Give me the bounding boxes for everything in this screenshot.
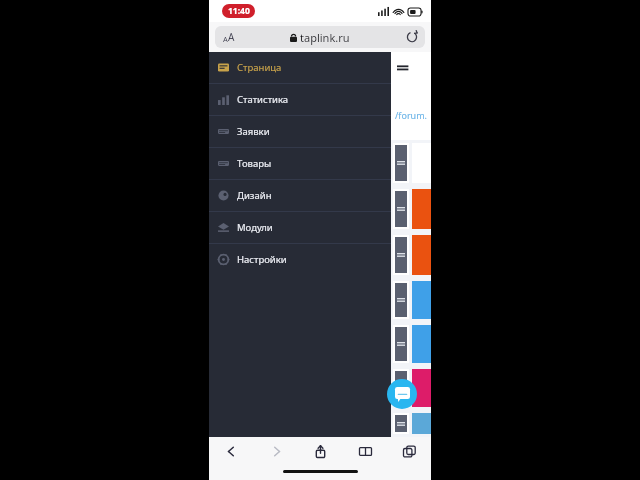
button[interactable]: Модули [209,212,391,243]
staticText: taplink.ru [300,30,350,45]
staticText: Заявки [237,125,270,138]
button[interactable]: Статистика [209,84,391,115]
button[interactable] [412,369,431,407]
button[interactable]: Tabs [397,439,421,463]
button[interactable]: Reorder item [395,327,407,361]
button[interactable]: Share [308,439,332,463]
staticText: A [228,30,235,44]
staticText: A [223,34,228,44]
button[interactable]: Forward [264,439,288,463]
button[interactable]: Reorder item [395,145,407,181]
button[interactable]: Заявки [209,116,391,147]
staticText: Модули [237,221,273,234]
button[interactable]: Reorder item [395,283,407,317]
button[interactable]: Open chat [387,379,417,409]
button[interactable]: Reorder item [395,371,407,405]
button[interactable]: Товары [209,148,391,179]
staticText: Настройки [237,253,287,266]
button[interactable]: Reload page [406,31,418,43]
button[interactable]: Reorder item [395,237,407,273]
button[interactable]: Text size options [215,26,425,48]
staticText: Дизайн [237,189,272,202]
button[interactable]: Bookmarks [353,439,377,463]
button[interactable]: Reorder item [395,191,407,227]
button[interactable]: Настройки [209,244,391,275]
staticText: Страница [237,61,282,74]
button[interactable]: Страница [209,52,391,83]
button[interactable]: Reorder item [395,415,407,432]
button[interactable]: Дизайн [209,180,391,211]
staticText: Товары [237,157,272,170]
button[interactable]: Back [219,439,243,463]
button[interactable]: /forum. [395,109,427,121]
button[interactable]: Open menu [397,62,409,74]
button[interactable]: Text size options [223,30,235,44]
staticText: Статистика [237,93,289,106]
staticText: 11:40 [228,5,250,17]
